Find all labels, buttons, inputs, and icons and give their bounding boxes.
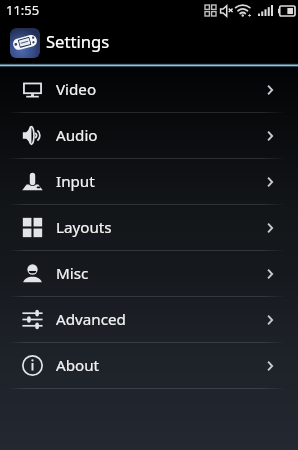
staticText: Input [56, 171, 95, 192]
button[interactable]: Misc [0, 251, 298, 296]
staticText: Misc [56, 263, 89, 284]
staticText: 11:55 [6, 1, 40, 19]
button[interactable]: Input [0, 159, 298, 204]
button[interactable]: About [0, 343, 298, 388]
staticText: Video [56, 79, 97, 100]
staticText: Layouts [56, 217, 112, 238]
button[interactable]: Layouts [0, 205, 298, 250]
button[interactable]: Advanced [0, 297, 298, 342]
button[interactable]: Video [0, 67, 298, 112]
staticText: About [56, 355, 100, 376]
button[interactable]: Audio [0, 113, 298, 158]
staticText: Settings [46, 30, 110, 53]
staticText: Advanced [56, 309, 126, 330]
staticText: Audio [56, 125, 98, 146]
button[interactable]: Settings app [0, 20, 298, 63]
